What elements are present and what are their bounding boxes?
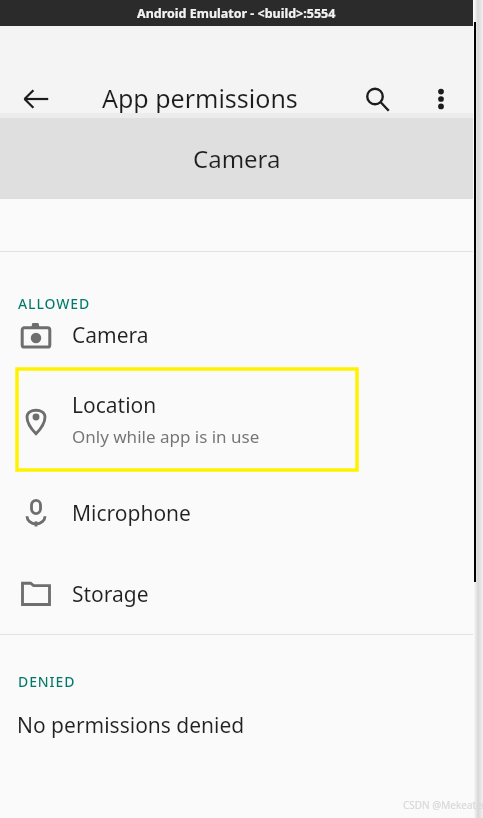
staticText: Microphone	[72, 499, 191, 528]
staticText: Location	[72, 391, 157, 420]
button[interactable]: Search	[353, 75, 401, 123]
button[interactable]: Microphone	[0, 471, 473, 555]
button[interactable]: No permissions denied	[0, 691, 473, 751]
button[interactable]: Location	[0, 368, 473, 471]
other: Location	[21, 405, 51, 435]
button[interactable]: More options	[417, 75, 465, 123]
button[interactable]: Camera	[0, 302, 473, 368]
staticText: DENIED	[18, 672, 76, 691]
staticText: No permissions denied	[17, 711, 245, 740]
staticText: Storage	[72, 580, 149, 609]
staticText: Camera	[72, 321, 149, 350]
staticText: CSDN @Mekeater	[403, 798, 483, 812]
other: Camera	[21, 320, 51, 350]
button[interactable]: Storage	[0, 555, 473, 633]
other: Storage	[21, 579, 51, 609]
other: Microphone	[21, 498, 51, 528]
staticText: ALLOWED	[18, 294, 91, 313]
staticText: Camera	[193, 142, 281, 175]
staticText: App permissions	[102, 81, 298, 115]
button[interactable]: Back	[12, 75, 60, 123]
staticText: Only while app is in use	[72, 425, 260, 448]
staticText: Android Emulator - <build>:5554	[137, 5, 336, 22]
